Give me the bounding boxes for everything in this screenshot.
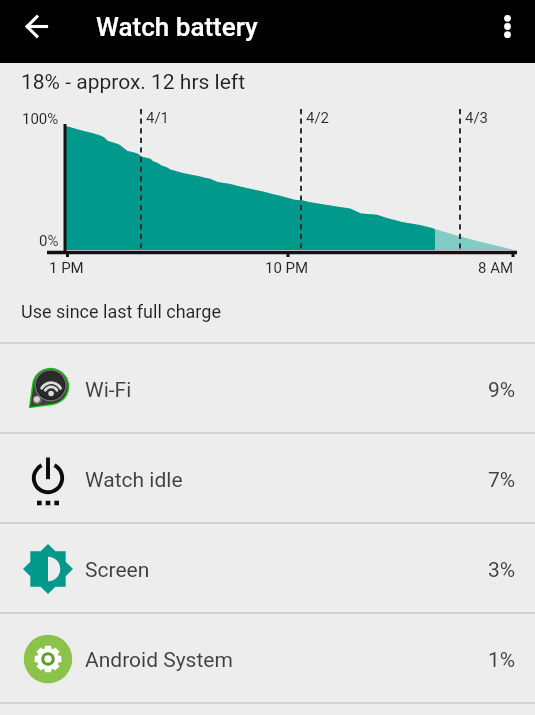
staticText: 0% [39, 232, 59, 250]
button[interactable]: Android System [0, 614, 535, 704]
staticText: 1 PM [49, 259, 84, 277]
staticText: 4/2 [306, 109, 330, 127]
staticText: 7% [488, 468, 516, 493]
staticText: Android System [85, 648, 233, 673]
staticText: 8 AM [478, 259, 514, 277]
staticText: Watch idle [85, 468, 183, 493]
staticText: 4/3 [465, 109, 489, 127]
staticText: Screen [85, 558, 150, 583]
button[interactable]: Back [14, 3, 61, 50]
staticText: 10 PM [265, 259, 309, 277]
button[interactable]: Wi-Fi [0, 344, 535, 434]
staticText: 3% [488, 558, 516, 583]
staticText: Watch battery [96, 12, 258, 42]
staticText: 9% [488, 378, 516, 403]
staticText: 100% [22, 110, 59, 128]
staticText: 18% - approx. 12 hrs left [21, 70, 246, 95]
staticText: 1% [488, 648, 516, 673]
button[interactable]: More options [484, 3, 531, 50]
button[interactable]: Watch idle [0, 434, 535, 524]
staticText: Wi-Fi [85, 378, 132, 403]
button[interactable]: Screen [0, 524, 535, 614]
staticText: Use since last full charge [21, 301, 221, 322]
staticText: 4/1 [146, 109, 170, 127]
